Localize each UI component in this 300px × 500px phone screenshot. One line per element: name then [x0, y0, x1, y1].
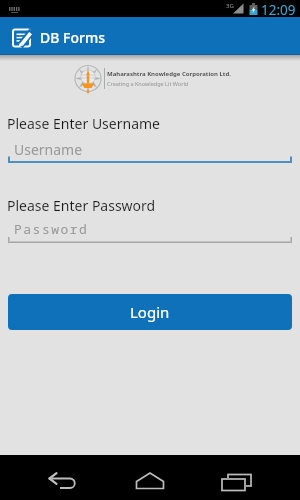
staticText: Creating a Knowledge Lit World — [107, 80, 189, 87]
staticText: Maharashtra Knowledge Corporation Ltd. — [107, 70, 231, 78]
staticText: 3G — [226, 2, 234, 10]
staticText: Please Enter Username — [7, 114, 160, 133]
button[interactable] — [30, 455, 110, 500]
button[interactable] — [110, 455, 190, 500]
staticText: DB Forms — [40, 28, 105, 47]
button[interactable] — [190, 455, 270, 500]
staticText: Username — [14, 140, 83, 159]
button[interactable]: Password — [8, 216, 292, 244]
staticText: Login — [130, 302, 170, 322]
button[interactable]: Username — [8, 136, 292, 164]
staticText: Password — [14, 220, 89, 238]
button[interactable]: Login — [8, 294, 292, 330]
staticText: 12:09 — [261, 1, 296, 19]
staticText: Please Enter Password — [7, 196, 156, 215]
